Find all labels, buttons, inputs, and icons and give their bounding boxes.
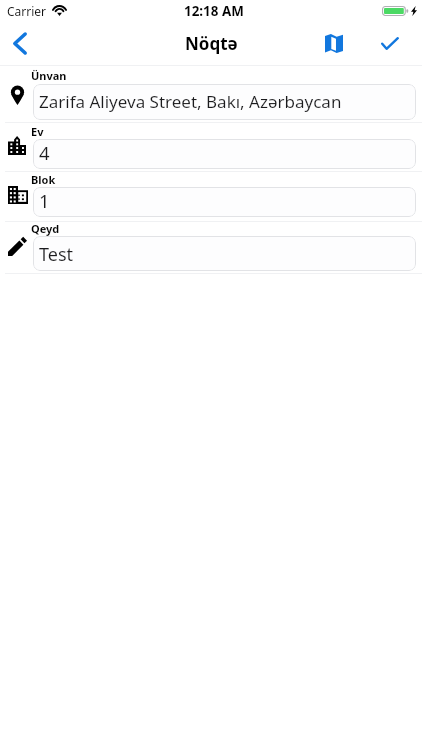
button[interactable]: Test <box>33 236 416 271</box>
button[interactable]: Save <box>368 21 412 66</box>
staticText: Ev <box>31 124 44 139</box>
staticText: Zarifa Aliyeva Street, Bakı, Azərbaycan <box>39 90 342 113</box>
staticText: Qeyd <box>31 221 60 236</box>
staticText: Carrier <box>7 3 47 19</box>
staticText: Ünvan <box>31 68 67 83</box>
staticText: Test <box>39 242 74 267</box>
button[interactable]: 4 <box>33 139 416 169</box>
button[interactable]: Map <box>312 21 356 66</box>
button[interactable]: Back <box>0 21 44 66</box>
staticText: 12:18 AM <box>184 2 244 20</box>
staticText: 4 <box>39 140 50 165</box>
staticText: 1 <box>39 188 50 213</box>
staticText: Nöqtə <box>185 32 238 55</box>
staticText: Blok <box>31 172 56 187</box>
button[interactable]: 1 <box>33 187 416 217</box>
button[interactable]: Zarifa Aliyeva Street, Bakı, Azərbaycan <box>33 84 416 120</box>
